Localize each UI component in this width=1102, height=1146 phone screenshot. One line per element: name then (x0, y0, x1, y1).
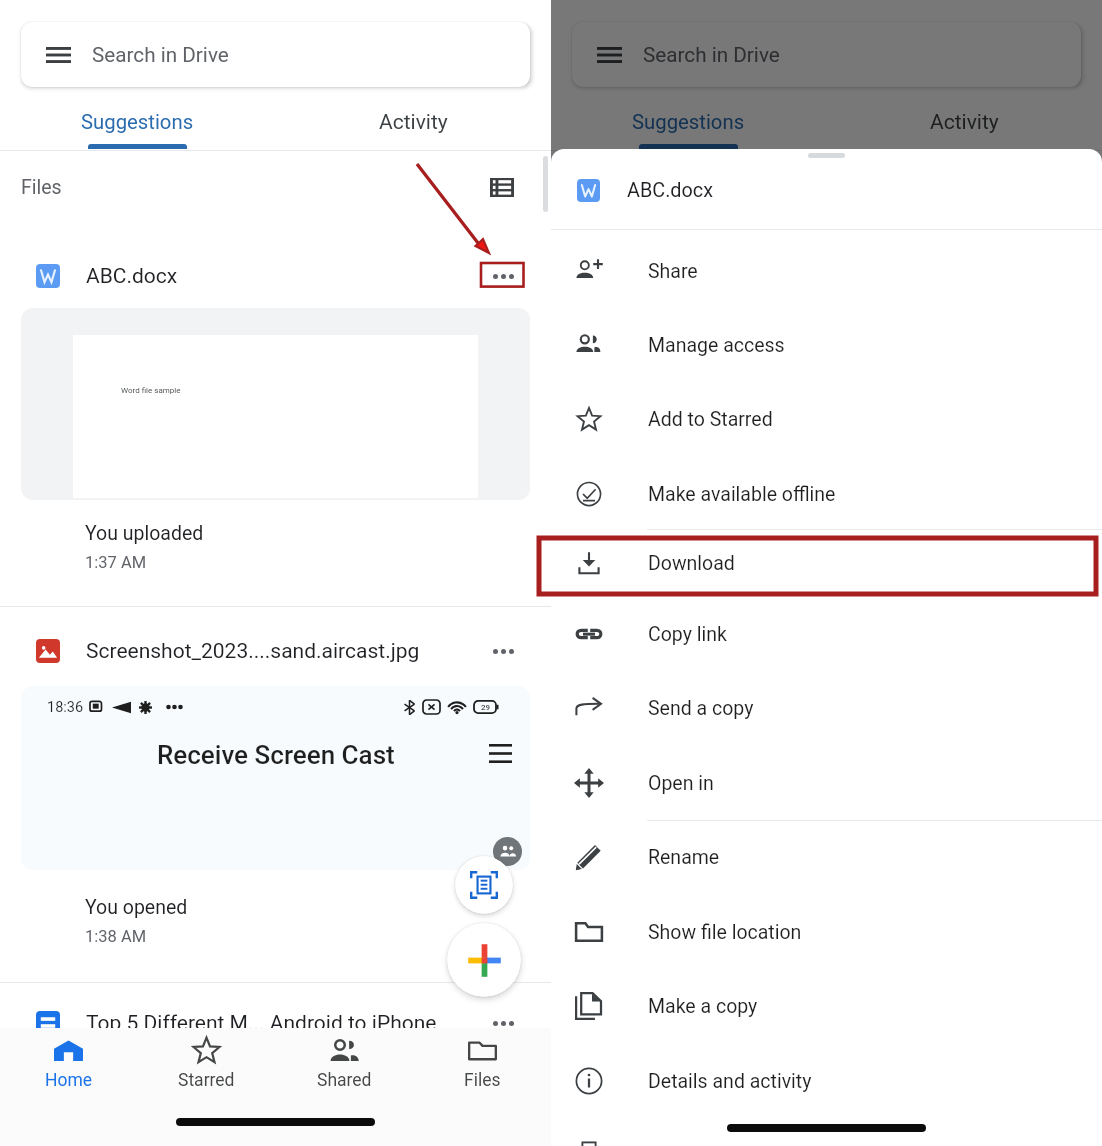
button[interactable]: 18:36 (21, 686, 530, 870)
button[interactable]: Starred (137, 1028, 275, 1106)
staticText: Copy link (648, 623, 727, 646)
button[interactable]: More options for screenshot (485, 633, 521, 669)
staticText: Share (648, 260, 698, 283)
staticText: 1:38 AM (85, 927, 147, 946)
staticText: 29 (481, 703, 491, 712)
staticText: Make available offline (648, 483, 836, 506)
button[interactable]: Word file sample (21, 308, 530, 500)
staticText: Download (648, 552, 735, 575)
button[interactable]: Suggestions (0, 108, 275, 150)
button[interactable]: Make a copy (551, 976, 1102, 1036)
button[interactable]: Open in (551, 753, 1102, 813)
button[interactable]: Scan document (455, 856, 513, 914)
button[interactable]: Screenshot_2023....sand.aircast.jpg (0, 627, 551, 675)
button[interactable]: Show file location (551, 902, 1102, 962)
staticText: Word file sample (121, 386, 181, 395)
staticText: Top 5 Different M... Android to iPhone (86, 1011, 437, 1036)
staticText: Files (464, 1070, 501, 1091)
staticText: Search in Drive (92, 43, 229, 67)
staticText: ABC.docx (86, 264, 178, 289)
staticText: 1:37 AM (85, 553, 147, 572)
button[interactable]: Open navigation menu (572, 22, 1081, 87)
button[interactable]: More options (485, 1005, 521, 1041)
button[interactable]: ABC.docx (577, 167, 1102, 213)
button[interactable]: Send a copy (551, 678, 1102, 738)
button[interactable]: Top 5 Different M... Android to iPhone (0, 1000, 551, 1046)
button[interactable]: ABC.docx (0, 252, 551, 300)
button[interactable]: More options for ABC.docx (485, 258, 521, 294)
staticText: Make a copy (648, 995, 758, 1018)
staticText: You uploaded (85, 522, 204, 545)
staticText: You opened (85, 896, 188, 919)
button[interactable]: Copy link (551, 604, 1102, 664)
button[interactable]: Manage access (551, 315, 1102, 375)
staticText: Details and activity (648, 1070, 812, 1093)
staticText: Starred (178, 1070, 235, 1091)
button[interactable]: Create new (447, 923, 521, 997)
button[interactable]: Add to Starred (551, 389, 1102, 449)
staticText: Suggestions (632, 110, 745, 134)
button[interactable]: Download (551, 533, 1102, 593)
button[interactable] (551, 1125, 1102, 1146)
staticText: Suggestions (81, 110, 194, 134)
staticText: Home (45, 1070, 93, 1091)
staticText: Show file location (648, 921, 802, 944)
staticText: ABC.docx (627, 179, 713, 202)
staticText: Screenshot_2023....sand.aircast.jpg (86, 639, 420, 664)
staticText: Open in (648, 772, 714, 795)
staticText: Activity (930, 110, 999, 135)
staticText: Manage access (648, 334, 785, 357)
staticText: Files (21, 176, 62, 199)
other: Open navigation menu (46, 47, 71, 63)
button[interactable]: Suggestions (551, 108, 826, 150)
staticText: Rename (648, 846, 720, 869)
button[interactable]: Home (0, 1028, 137, 1106)
button[interactable]: Switch to list layout (482, 167, 522, 207)
button[interactable]: Share (551, 241, 1102, 301)
staticText: Shared (317, 1070, 372, 1091)
other: Open navigation menu (597, 47, 622, 63)
button[interactable]: Open navigation menu (21, 22, 530, 87)
button[interactable]: Details and activity (551, 1051, 1102, 1111)
staticText: Add to Starred (648, 408, 773, 431)
button[interactable]: Make available offline (551, 464, 1102, 524)
button[interactable]: Shared (275, 1028, 413, 1106)
staticText: Receive Screen Cast (157, 740, 395, 770)
staticText: Activity (379, 110, 448, 135)
button[interactable]: Files (413, 1028, 551, 1106)
button[interactable]: Rename (551, 827, 1102, 887)
staticText: 18:36 (47, 699, 84, 716)
staticText: Search in Drive (643, 43, 780, 67)
button[interactable]: Activity (826, 108, 1102, 150)
staticText: Send a copy (648, 697, 754, 720)
button[interactable]: Activity (275, 108, 551, 150)
